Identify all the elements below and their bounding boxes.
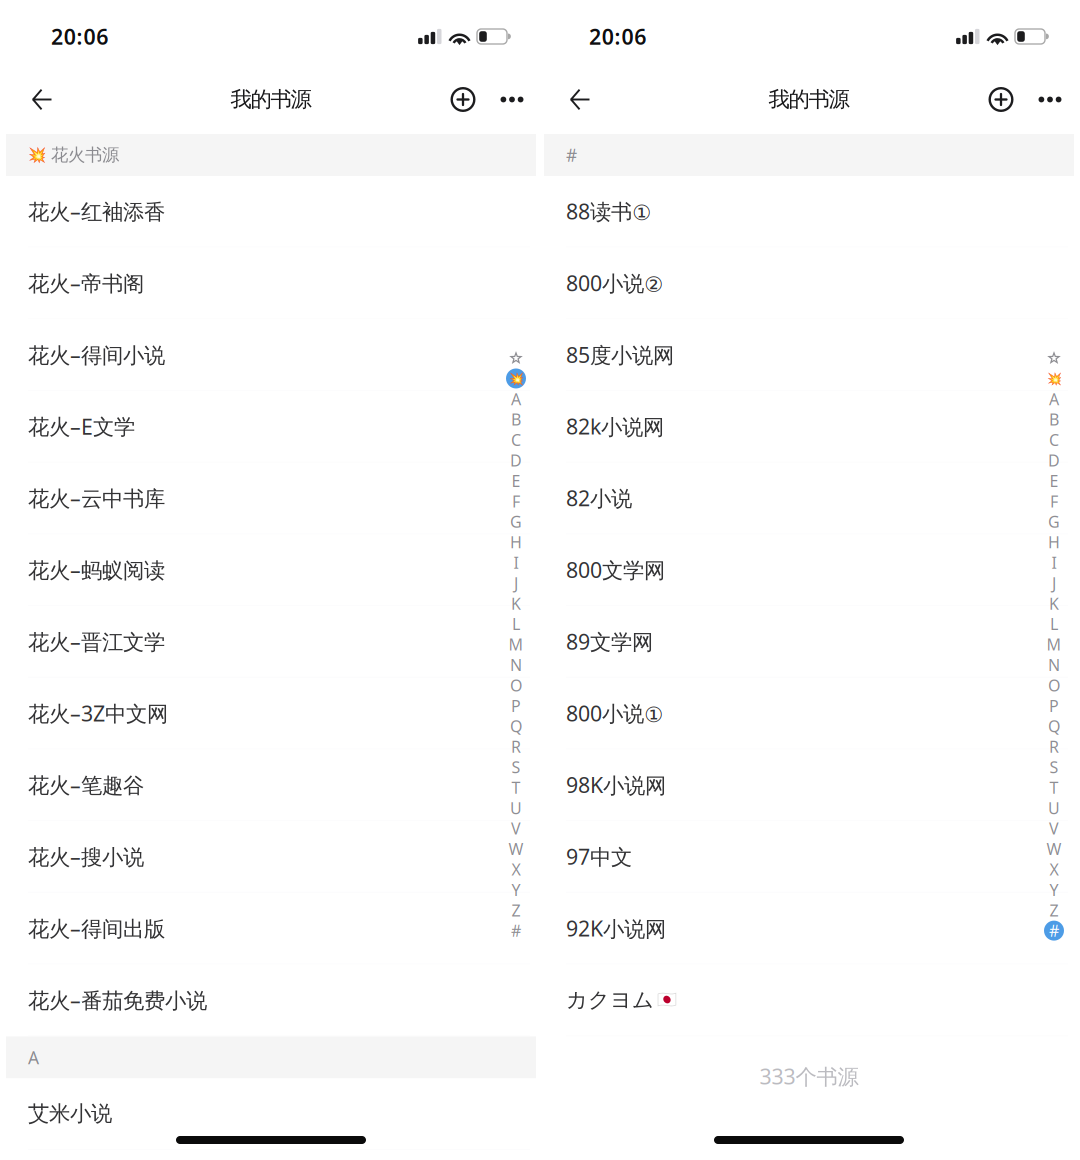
button[interactable]: Jump to M <box>1043 634 1065 654</box>
staticText: G <box>510 511 522 532</box>
button[interactable]: Jump to T <box>1043 777 1065 798</box>
button[interactable]: Jump to N <box>505 654 527 675</box>
button[interactable]: 82小说 <box>544 463 1074 534</box>
button[interactable]: Jump to C <box>505 430 527 450</box>
button[interactable]: Jump to A <box>505 389 527 409</box>
button[interactable]: 花火–得间小说 <box>6 319 536 391</box>
button[interactable]: Back <box>554 73 606 126</box>
button[interactable]: Jump to M <box>505 634 527 654</box>
button[interactable]: Jump to N <box>1043 654 1065 675</box>
button[interactable]: Jump to P <box>1043 695 1065 716</box>
button[interactable]: Jump to 💥 <box>1043 368 1065 389</box>
staticText: J <box>514 572 518 594</box>
button[interactable]: Jump to E <box>1043 470 1065 491</box>
button[interactable]: 花火–晋江文学 <box>6 606 536 678</box>
button[interactable]: Jump to F <box>1043 491 1065 511</box>
button[interactable]: Jump to # <box>1043 920 1065 941</box>
button[interactable]: Jump to E <box>505 470 527 491</box>
staticText: 🇯🇵 <box>657 991 677 1009</box>
button[interactable]: 85度小说网 <box>544 319 1074 391</box>
button[interactable]: Jump to J <box>505 573 527 593</box>
button[interactable]: Back <box>16 73 68 126</box>
button[interactable]: 花火–得间出版 <box>6 893 536 965</box>
button[interactable]: Jump to S <box>505 757 527 777</box>
button[interactable]: More options <box>491 73 533 126</box>
button[interactable]: Jump to B <box>505 409 527 429</box>
button[interactable]: Jump to A <box>1043 389 1065 409</box>
button[interactable]: 花火–云中书库 <box>6 463 536 534</box>
button[interactable]: 97中文 <box>544 821 1074 893</box>
button[interactable]: 花火–红袖添香 <box>6 176 536 248</box>
button[interactable]: Jump to R <box>1043 736 1065 757</box>
button[interactable]: 花火–番茄免费小说 <box>6 965 536 1036</box>
button[interactable]: Jump to K <box>505 593 527 614</box>
button[interactable]: Jump to P <box>505 695 527 716</box>
button[interactable]: 花火–蚂蚁阅读 <box>6 534 536 606</box>
button[interactable]: Add book source <box>977 73 1025 126</box>
button[interactable]: 800小说① <box>544 678 1074 750</box>
button[interactable]: Jump to Z <box>1043 900 1065 920</box>
button[interactable]: Jump to S <box>1043 757 1065 777</box>
button[interactable]: 92K小说网 <box>544 893 1074 965</box>
button[interactable]: 花火–笔趣谷 <box>6 750 536 821</box>
button[interactable]: Jump to X <box>1043 859 1065 879</box>
button[interactable]: Jump to L <box>1043 614 1065 634</box>
button[interactable]: 800文学网 <box>544 534 1074 606</box>
button[interactable]: Jump to B <box>1043 409 1065 429</box>
button[interactable]: Jump to 💥 <box>505 368 527 389</box>
staticText: 800小说① <box>566 699 663 727</box>
staticText: 20:06 <box>51 22 108 51</box>
button[interactable]: Jump to J <box>1043 573 1065 593</box>
button[interactable]: More options <box>1029 73 1071 126</box>
staticText: M <box>1046 634 1061 655</box>
button[interactable]: 88读书① <box>544 176 1074 248</box>
button[interactable]: Jump to V <box>505 818 527 838</box>
button[interactable]: Add book source <box>439 73 487 126</box>
staticText: 花火–云中书库 <box>28 484 165 512</box>
button[interactable]: Jump to Y <box>505 879 527 900</box>
button[interactable]: Jump to I <box>1043 552 1065 573</box>
button[interactable]: Jump to L <box>505 614 527 634</box>
button[interactable]: Jump to U <box>1043 798 1065 818</box>
button[interactable]: Jump to D <box>505 450 527 470</box>
button[interactable]: Jump to Q <box>505 716 527 736</box>
button[interactable]: Jump to V <box>1043 818 1065 838</box>
button[interactable]: Jump to ☆ <box>1043 348 1065 368</box>
button[interactable]: カクヨム <box>544 965 1074 1036</box>
button[interactable]: 82k小说网 <box>544 391 1074 463</box>
button[interactable]: 艾米小说 <box>6 1078 536 1150</box>
button[interactable]: Jump to G <box>1043 511 1065 532</box>
button[interactable]: Jump to O <box>1043 675 1065 695</box>
button[interactable]: Jump to R <box>505 736 527 757</box>
button[interactable]: 花火–搜小说 <box>6 821 536 893</box>
button[interactable]: Jump to X <box>505 859 527 879</box>
button[interactable]: Jump to W <box>505 839 527 859</box>
button[interactable]: Jump to I <box>505 552 527 573</box>
staticText: 花火–番茄免费小说 <box>28 986 207 1014</box>
button[interactable]: Jump to W <box>1043 839 1065 859</box>
button[interactable]: Jump to U <box>505 798 527 818</box>
button[interactable]: 花火–帝书阁 <box>6 248 536 319</box>
button[interactable]: Jump to K <box>1043 593 1065 614</box>
button[interactable]: Jump to F <box>505 491 527 511</box>
button[interactable]: Jump to O <box>505 675 527 695</box>
button[interactable]: 800小说② <box>544 248 1074 319</box>
button[interactable]: Jump to H <box>1043 532 1065 552</box>
button[interactable]: Jump to D <box>1043 450 1065 470</box>
button[interactable]: Jump to ☆ <box>505 348 527 368</box>
button[interactable]: Jump to Q <box>1043 716 1065 736</box>
button[interactable]: Jump to T <box>505 777 527 798</box>
button[interactable]: Jump to Y <box>1043 879 1065 900</box>
button[interactable]: Jump to G <box>505 511 527 532</box>
button[interactable]: 98K小说网 <box>544 750 1074 821</box>
button[interactable]: 花火–E文学 <box>6 391 536 463</box>
button[interactable]: Jump to H <box>505 532 527 552</box>
staticText: 85度小说网 <box>566 340 674 369</box>
staticText: N <box>510 654 522 675</box>
button[interactable]: 花火–3Z中文网 <box>6 678 536 750</box>
staticText: 98K小说网 <box>566 771 666 799</box>
button[interactable]: Jump to Z <box>505 900 527 920</box>
button[interactable]: 89文学网 <box>544 606 1074 678</box>
button[interactable]: Jump to # <box>505 920 527 941</box>
button[interactable]: Jump to C <box>1043 430 1065 450</box>
